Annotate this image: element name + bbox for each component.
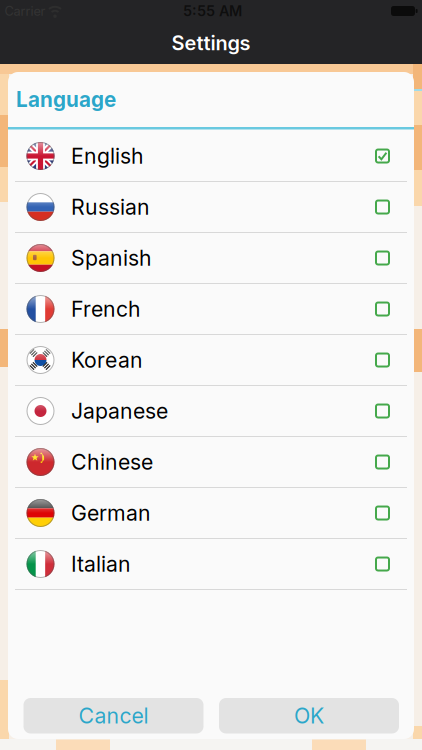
staticText: Cancel: [78, 703, 148, 728]
button[interactable]: Korean: [8, 335, 414, 385]
staticText: Japanese: [71, 398, 168, 424]
staticText: Chinese: [71, 449, 153, 475]
staticText: Italian: [71, 551, 131, 577]
staticText: 5:55 AM: [183, 2, 242, 20]
button[interactable]: OK: [219, 698, 399, 733]
button[interactable]: German: [8, 488, 414, 538]
button[interactable]: English: [8, 131, 414, 181]
staticText: Carrier: [4, 3, 45, 19]
button[interactable]: Spanish: [8, 233, 414, 283]
staticText: French: [71, 296, 141, 322]
button[interactable]: Italian: [8, 539, 414, 589]
button[interactable]: Cancel: [23, 698, 203, 733]
staticText: Spanish: [71, 245, 152, 271]
button[interactable]: Chinese: [8, 437, 414, 487]
button[interactable]: Russian: [8, 182, 414, 232]
staticText: German: [71, 500, 151, 526]
staticText: English: [71, 143, 144, 169]
staticText: Settings: [171, 31, 250, 55]
staticText: OK: [294, 703, 324, 728]
button[interactable]: French: [8, 284, 414, 334]
staticText: Language: [16, 87, 116, 112]
staticText: Russian: [71, 194, 150, 220]
staticText: Korean: [71, 347, 143, 373]
button[interactable]: Japanese: [8, 386, 414, 436]
